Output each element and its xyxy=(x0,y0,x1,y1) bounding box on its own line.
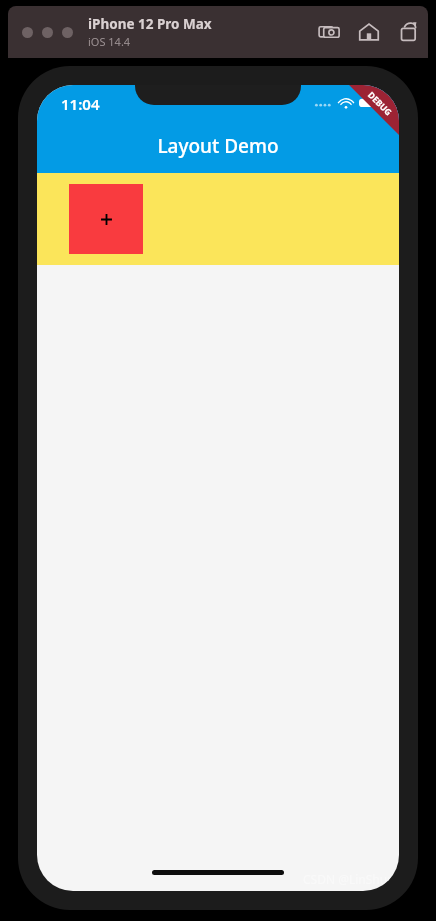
button[interactable] xyxy=(22,27,33,38)
staticText: DEBUG xyxy=(365,89,395,119)
button[interactable]: Home xyxy=(356,19,382,45)
staticText: CSDN @LinShun xyxy=(303,871,395,887)
staticText: iOS 14.4 xyxy=(88,34,131,49)
button[interactable] xyxy=(62,27,73,38)
button[interactable]: Screenshot xyxy=(316,19,342,45)
staticText: Layout Demo xyxy=(157,133,279,159)
staticText: iPhone 12 Pro Max xyxy=(88,15,212,33)
button[interactable]: Rotate xyxy=(396,19,422,45)
staticText: 11:04 xyxy=(61,94,100,114)
button[interactable]: Add xyxy=(69,184,143,254)
button[interactable] xyxy=(42,27,53,38)
